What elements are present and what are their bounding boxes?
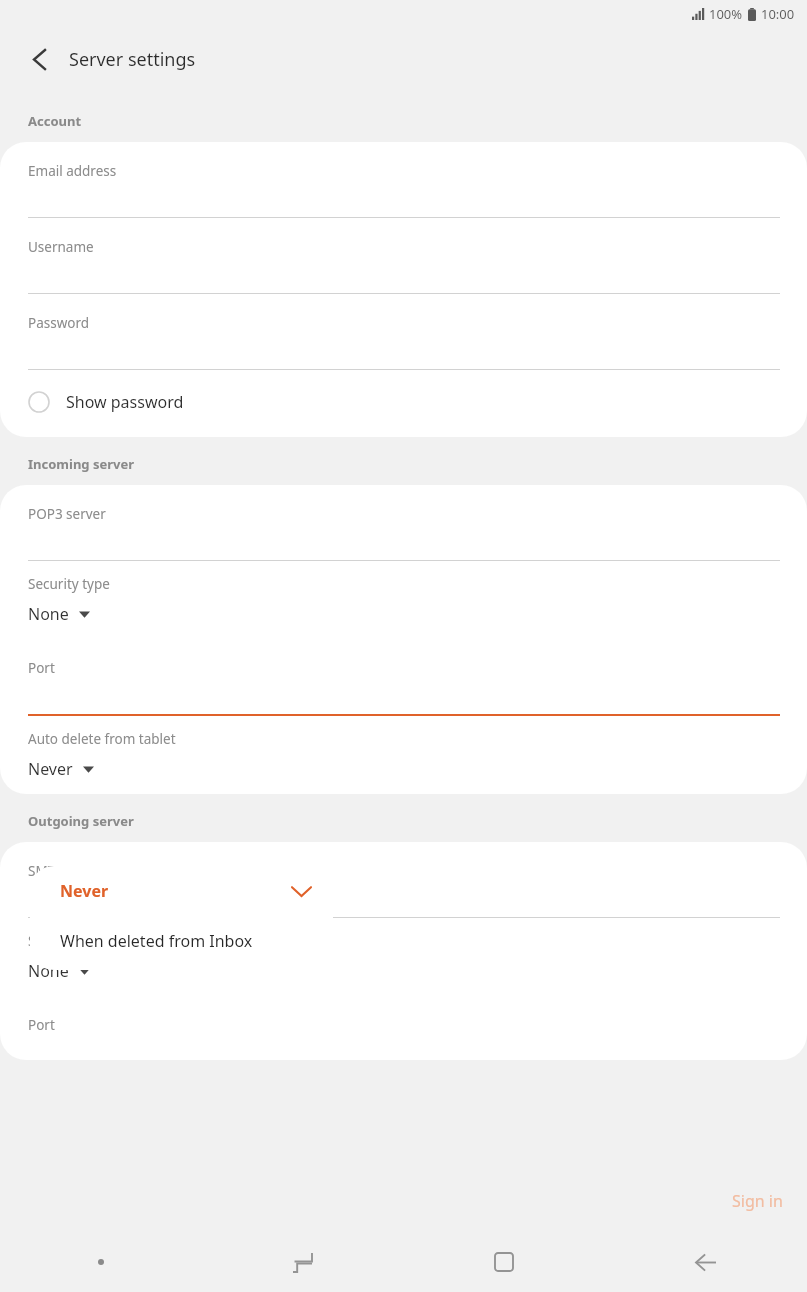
staticText: Outgoing server <box>28 812 134 830</box>
staticText: Auto delete from tablet <box>28 730 176 748</box>
staticText: Show password <box>66 391 184 413</box>
staticText: Incoming server <box>28 455 135 473</box>
button[interactable]: Recents <box>201 1232 403 1292</box>
button[interactable]: Security type <box>0 561 807 639</box>
button[interactable]: Port <box>0 639 807 716</box>
staticText: None <box>28 960 69 982</box>
button[interactable]: Email address <box>0 142 807 218</box>
staticText: Security type <box>28 575 110 593</box>
button[interactable]: When deleted from Inbox <box>30 916 333 970</box>
staticText: Email address <box>28 162 117 180</box>
staticText: 10:00 <box>761 5 795 23</box>
button[interactable]: Back <box>22 42 56 76</box>
staticText: Sign in <box>732 1190 783 1212</box>
staticText: Server settings <box>69 47 196 72</box>
staticText: Password <box>28 314 90 332</box>
button[interactable]: Back <box>605 1232 807 1292</box>
button[interactable]: SMTP server <box>0 842 807 918</box>
staticText: Security type <box>28 932 110 950</box>
button[interactable]: POP3 server <box>0 485 807 561</box>
button[interactable]: Auto delete from tablet <box>0 716 807 794</box>
staticText: 100% <box>709 5 743 23</box>
staticText: POP3 server <box>28 505 106 523</box>
staticText: Port <box>28 659 55 677</box>
staticText: SMTP server <box>28 862 107 880</box>
button[interactable]: Never <box>30 866 333 916</box>
staticText: None <box>28 603 69 625</box>
button[interactable]: Security type <box>0 918 807 996</box>
button[interactable]: Menu <box>0 1232 201 1292</box>
staticText: Never <box>28 758 73 780</box>
staticText: Account <box>28 112 82 130</box>
button[interactable]: Sign in <box>708 1178 807 1224</box>
button[interactable]: Password <box>0 294 807 370</box>
staticText: Never <box>60 880 109 902</box>
staticText: When deleted from Inbox <box>60 930 253 952</box>
button[interactable]: Show password <box>0 370 807 437</box>
staticText: Username <box>28 238 94 256</box>
button[interactable]: Username <box>0 218 807 294</box>
button[interactable]: Home <box>403 1232 605 1292</box>
staticText: Port <box>28 1016 55 1034</box>
